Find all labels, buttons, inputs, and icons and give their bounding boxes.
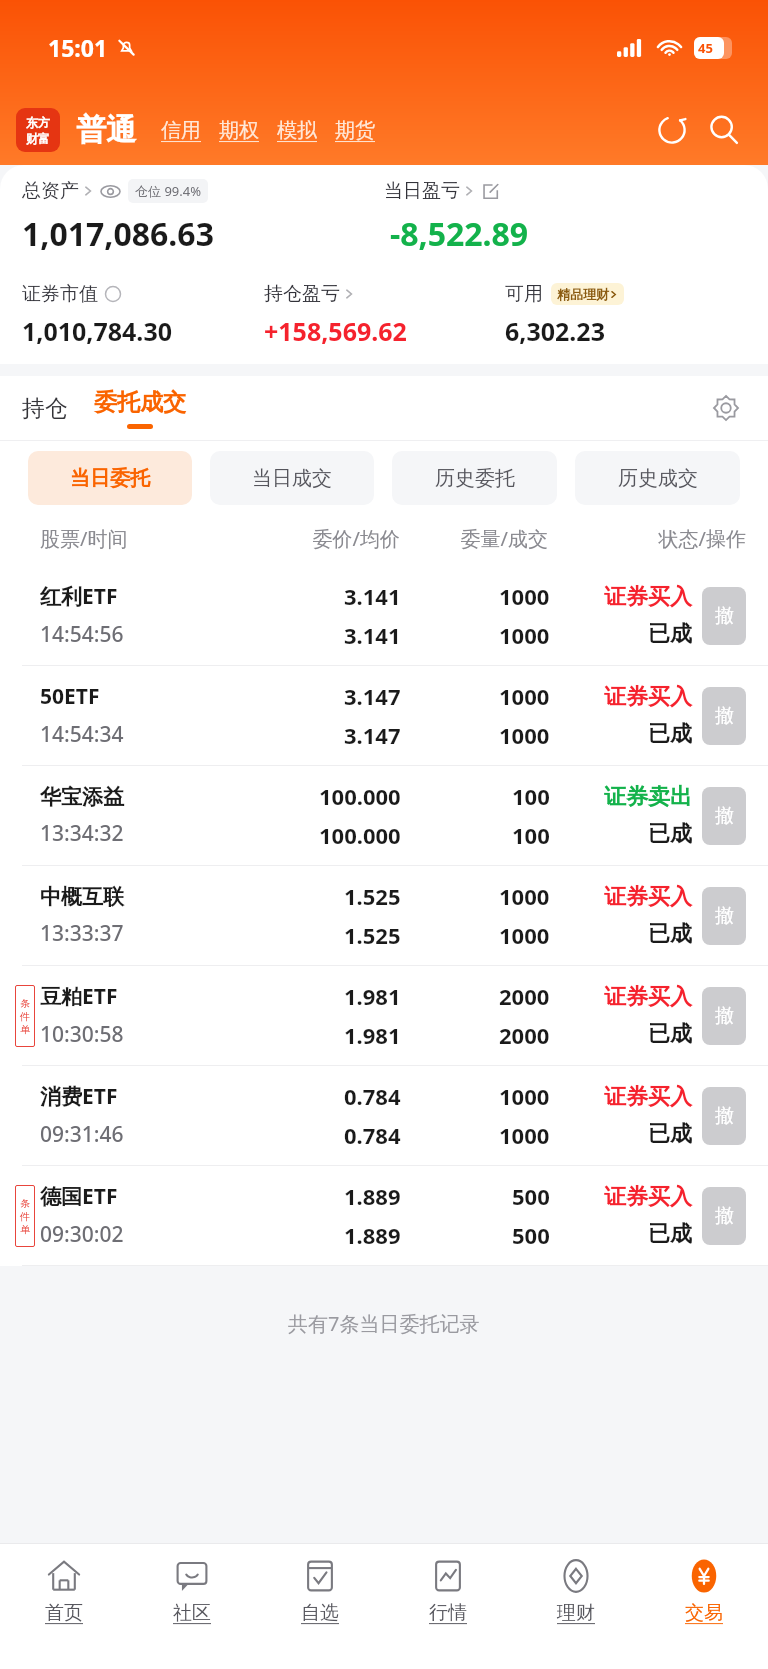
staticText: 证券买入: [604, 883, 692, 911]
button[interactable]: 社区: [128, 1554, 256, 1669]
button[interactable]: 撤: [702, 587, 746, 645]
button[interactable]: 期货: [326, 118, 384, 143]
staticText: 首页: [45, 1601, 83, 1625]
staticText: 东方: [26, 115, 50, 130]
staticText: 已成: [648, 1120, 692, 1148]
button[interactable]: 普通: [74, 111, 138, 149]
staticText: 1000: [499, 1081, 550, 1111]
button[interactable]: 总资产: [22, 179, 384, 203]
staticText: 状态/操作: [548, 525, 746, 552]
staticText: 证券卖出: [604, 783, 692, 811]
staticText: 15:01: [48, 32, 108, 63]
button[interactable]: 模拟: [268, 118, 326, 143]
button[interactable]: 精品理财: [551, 283, 624, 305]
staticText: 德国ETF: [40, 1182, 118, 1211]
staticText: 历史委托: [435, 466, 515, 491]
button[interactable]: Search: [702, 108, 746, 152]
button[interactable]: 中概互联: [0, 866, 768, 966]
button[interactable]: 撤: [702, 1187, 746, 1245]
button[interactable]: 自选: [256, 1554, 384, 1669]
staticText: 3.147: [344, 681, 401, 711]
staticText: 证券市值: [22, 282, 98, 306]
staticText: 1000: [499, 581, 550, 611]
button[interactable]: 行情: [384, 1554, 512, 1669]
staticText: 条: [20, 1197, 30, 1210]
staticText: 模拟: [277, 118, 317, 143]
button[interactable]: 红利ETF: [0, 566, 768, 666]
button[interactable]: 撤: [702, 987, 746, 1045]
staticText: 撤: [715, 804, 734, 828]
button[interactable]: 证券市值: [22, 282, 264, 306]
staticText: 证券买入: [604, 1183, 692, 1211]
button[interactable]: 华宝添益: [0, 766, 768, 866]
staticText: 当日成交: [252, 466, 332, 491]
button[interactable]: 撤: [702, 687, 746, 745]
staticText: 撤: [715, 1104, 734, 1128]
button[interactable]: 消费ETF: [0, 1066, 768, 1166]
staticText: 1000: [499, 681, 550, 711]
staticText: 09:30:02: [40, 1220, 124, 1249]
staticText: 总资产: [22, 179, 79, 203]
staticText: 500: [512, 1181, 550, 1211]
staticText: 当日委托: [70, 466, 150, 491]
button[interactable]: 历史委托: [392, 451, 557, 505]
button[interactable]: 撤: [702, 887, 746, 945]
staticText: 1000: [499, 1120, 550, 1150]
button[interactable]: 撤: [702, 1087, 746, 1145]
staticText: 交易: [685, 1601, 723, 1625]
staticText: 撤: [715, 1204, 734, 1228]
button[interactable]: 交易: [640, 1554, 768, 1669]
staticText: 1000: [499, 720, 550, 750]
button[interactable]: Refresh: [650, 108, 694, 152]
staticText: 已成: [648, 1220, 692, 1248]
button[interactable]: 撤: [702, 787, 746, 845]
staticText: 期货: [335, 118, 375, 143]
button[interactable]: 条: [0, 1166, 768, 1266]
button[interactable]: 东方财富: [16, 108, 60, 152]
button[interactable]: 持仓盈亏: [264, 282, 505, 306]
button[interactable]: 条: [0, 966, 768, 1066]
button[interactable]: 当日委托: [28, 451, 192, 505]
staticText: 自选: [301, 1601, 339, 1625]
staticText: 华宝添益: [40, 784, 124, 810]
staticText: 2000: [499, 1020, 550, 1050]
staticText: 件: [20, 1010, 30, 1023]
button[interactable]: 持仓: [22, 394, 72, 423]
staticText: 1.889: [344, 1181, 401, 1211]
button[interactable]: 信用: [152, 118, 210, 143]
staticText: 理财: [557, 1601, 595, 1625]
staticText: 0.784: [344, 1120, 401, 1150]
button[interactable]: 期权: [210, 118, 268, 143]
staticText: 1000: [499, 620, 550, 650]
staticText: 社区: [173, 1601, 211, 1625]
staticText: 撤: [715, 904, 734, 928]
staticText: 1.889: [344, 1220, 401, 1250]
staticText: 1,010,784.30: [22, 314, 264, 348]
staticText: +158,569.62: [264, 314, 505, 348]
button[interactable]: 首页: [0, 1554, 128, 1669]
staticText: 可用: [505, 282, 543, 306]
button[interactable]: 当日成交: [210, 451, 374, 505]
button[interactable]: 历史成交: [575, 451, 740, 505]
staticText: -8,522.89: [390, 212, 529, 256]
staticText: 期权: [219, 118, 259, 143]
staticText: 证券买入: [604, 983, 692, 1011]
staticText: 中概互联: [40, 884, 124, 910]
button[interactable]: 当日盈亏: [384, 179, 746, 203]
staticText: 证券买入: [604, 683, 692, 711]
staticText: 10:30:58: [40, 1020, 124, 1049]
staticText: 14:54:56: [40, 620, 124, 649]
staticText: 普通: [76, 111, 136, 149]
staticText: 信用: [161, 118, 201, 143]
button[interactable]: 委托成交: [94, 388, 186, 429]
button[interactable]: 50ETF: [0, 666, 768, 766]
staticText: 持仓盈亏: [264, 282, 340, 306]
staticText: 行情: [429, 1601, 467, 1625]
button[interactable]: Settings: [706, 388, 746, 428]
staticText: 1.981: [344, 981, 401, 1011]
staticText: 已成: [648, 1020, 692, 1048]
button[interactable]: 理财: [512, 1554, 640, 1669]
staticText: 100.000: [319, 820, 401, 850]
staticText: 3.147: [344, 720, 401, 750]
staticText: 1.981: [344, 1020, 401, 1050]
